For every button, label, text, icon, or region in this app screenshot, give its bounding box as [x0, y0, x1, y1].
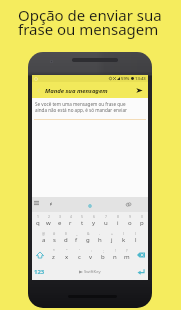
staticText: h — [98, 236, 102, 244]
staticText: s — [53, 236, 56, 244]
staticText: q — [36, 219, 40, 227]
staticText: 2 — [48, 214, 50, 219]
button[interactable]: Stickers — [85, 197, 94, 212]
staticText: j — [111, 236, 113, 244]
staticText: " — [66, 248, 68, 253]
button[interactable]: Enter — [133, 263, 148, 280]
staticText: e — [58, 219, 62, 227]
button[interactable]: @ — [38, 229, 49, 246]
staticText: $ — [65, 231, 67, 236]
staticText: Opção de enviar sua frase ou mensagem — [18, 5, 162, 39]
staticText: v — [89, 253, 93, 261]
button[interactable]: ) — [130, 229, 142, 246]
staticText: SwiftKey — [84, 269, 101, 275]
staticText: ) — [135, 231, 137, 236]
staticText: 3 — [59, 214, 61, 219]
staticText: 123 — [34, 268, 45, 276]
staticText: n — [113, 253, 117, 261]
button[interactable]: & — [82, 229, 94, 246]
button[interactable]: SwiftKey — [47, 263, 133, 280]
staticText: @ — [42, 231, 46, 236]
staticText: ? — [126, 248, 128, 253]
button[interactable]: ' — [73, 246, 85, 263]
staticText: 8 — [117, 214, 119, 219]
button[interactable]: * — [47, 246, 60, 263]
staticText: p — [140, 219, 144, 227]
staticText: ! — [115, 248, 116, 253]
staticText: x — [65, 253, 69, 261]
button[interactable]: ? — [121, 246, 133, 263]
staticText: 6 — [93, 214, 95, 219]
staticText: t — [81, 219, 84, 227]
staticText: & — [87, 231, 90, 236]
button[interactable]: 123 — [32, 263, 47, 280]
staticText: # — [53, 231, 56, 236]
staticText: 59% — [121, 76, 130, 82]
staticText: : — [91, 248, 92, 253]
button[interactable]: Voice input — [46, 197, 55, 212]
staticText: ; — [103, 248, 104, 253]
staticText: * — [53, 248, 55, 253]
button[interactable]: 7 — [100, 212, 112, 229]
staticText: 1 — [37, 214, 39, 219]
staticText: f — [75, 236, 78, 244]
button[interactable]: " — [60, 246, 73, 263]
button[interactable]: 2 — [43, 212, 54, 229]
button[interactable]: 4 — [65, 212, 76, 229]
button[interactable]: $ — [60, 229, 71, 246]
button[interactable]: 6 — [88, 212, 100, 229]
staticText: - — [99, 231, 101, 236]
staticText: ' — [79, 248, 80, 253]
staticText: u — [104, 219, 108, 227]
button[interactable]: Menu — [32, 197, 41, 212]
staticText: i — [117, 219, 119, 227]
button[interactable]: ! — [109, 246, 121, 263]
staticText: k — [122, 236, 126, 244]
staticText: o — [128, 219, 132, 227]
button[interactable]: Back — [32, 84, 45, 97]
staticText: y — [92, 219, 96, 227]
button[interactable]: 1 — [32, 212, 43, 229]
button[interactable]: Settings — [124, 197, 133, 212]
staticText: b — [101, 253, 105, 261]
staticText: m — [124, 253, 130, 261]
button[interactable]: : — [85, 246, 97, 263]
staticText: z — [52, 253, 55, 261]
staticText: 13:43 — [135, 76, 146, 82]
staticText: w — [46, 219, 51, 227]
staticText: Mande sua mensagem — [45, 87, 108, 95]
staticText: 9 — [129, 214, 131, 219]
button[interactable]: Backspace — [133, 246, 148, 263]
button[interactable]: 9 — [124, 212, 136, 229]
staticText: a — [42, 236, 46, 244]
staticText: g — [86, 236, 90, 244]
button[interactable]: # — [49, 229, 60, 246]
button[interactable]: 5 — [76, 212, 88, 229]
staticText: 7 — [105, 214, 107, 219]
staticText: c — [78, 253, 81, 261]
button[interactable]: 0 — [136, 212, 148, 229]
button[interactable]: ( — [118, 229, 130, 246]
staticText: Se você tem uma mensagem ou frase que ai… — [35, 101, 127, 113]
staticText: 4 — [70, 214, 72, 219]
button[interactable]: ; — [97, 246, 109, 263]
staticText: + — [111, 231, 113, 236]
button[interactable]: + — [106, 229, 118, 246]
staticText: d — [64, 236, 68, 244]
staticText: 0 — [141, 214, 143, 219]
staticText: ( — [123, 231, 125, 236]
button[interactable]: _ — [71, 229, 82, 246]
button[interactable]: 3 — [54, 212, 65, 229]
button[interactable]: - — [94, 229, 106, 246]
button[interactable]: 8 — [112, 212, 124, 229]
button[interactable]: Send — [132, 83, 146, 97]
staticText: r — [69, 219, 72, 227]
staticText: l — [135, 236, 137, 244]
staticText: 5 — [81, 214, 83, 219]
button[interactable]: Shift — [32, 246, 47, 263]
staticText: _ — [76, 231, 78, 236]
